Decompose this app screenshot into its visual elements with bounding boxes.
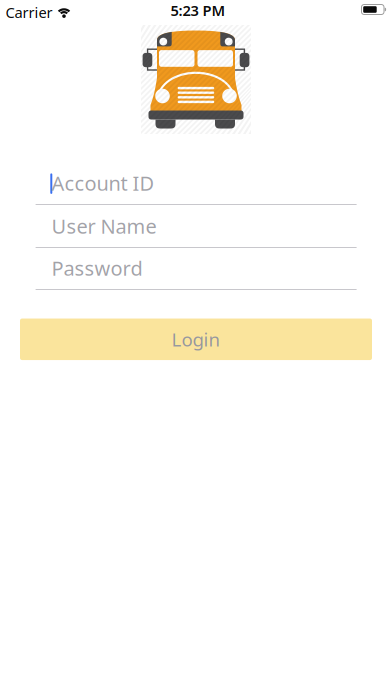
staticText: Account ID (51, 170, 154, 196)
staticText: Login (171, 327, 220, 352)
button[interactable]: Password (36, 252, 357, 290)
staticText: Password (51, 255, 142, 281)
button[interactable]: Login (20, 319, 372, 360)
staticText: User Name (51, 213, 156, 239)
button[interactable]: Account ID (36, 167, 357, 205)
staticText: Carrier (5, 2, 52, 22)
staticText: 5:23 PM (170, 1, 225, 20)
button[interactable]: User Name (36, 210, 357, 248)
